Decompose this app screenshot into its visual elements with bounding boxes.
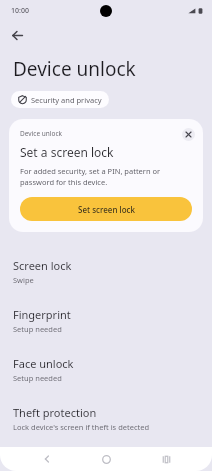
button[interactable]: Screen lock xyxy=(0,257,212,286)
staticText: Lock device's screen if theft is detecte… xyxy=(13,422,150,432)
button[interactable]: Face unlock xyxy=(0,355,212,384)
staticText: For added security, set a PIN, pattern o… xyxy=(20,166,191,187)
button[interactable]: Home xyxy=(93,447,119,471)
button[interactable]: Theft protection xyxy=(0,404,212,433)
staticText: Device unlock xyxy=(13,56,136,82)
staticText: Setup needed xyxy=(13,324,62,334)
staticText: Swipe xyxy=(13,275,34,285)
staticText: Screen lock xyxy=(13,258,72,273)
button[interactable]: Back xyxy=(6,24,28,46)
button[interactable]: Back xyxy=(34,447,60,471)
staticText: Device unlock xyxy=(20,129,182,138)
staticText: Fingerprint xyxy=(13,307,71,322)
button[interactable]: Fingerprint xyxy=(0,306,212,335)
staticText: Theft protection xyxy=(13,405,97,420)
staticText: Setup needed xyxy=(13,373,62,383)
button[interactable]: Set screen lock xyxy=(20,197,192,221)
staticText: Set screen lock xyxy=(78,204,135,215)
staticText: Face unlock xyxy=(13,356,74,371)
button[interactable]: Recent apps xyxy=(153,447,179,471)
staticText: 10:00 xyxy=(11,6,29,16)
button[interactable]: Dismiss xyxy=(182,128,195,141)
button[interactable]: Security and privacy xyxy=(11,91,109,108)
staticText: Security and privacy xyxy=(31,95,102,105)
staticText: Set a screen lock xyxy=(20,144,114,160)
